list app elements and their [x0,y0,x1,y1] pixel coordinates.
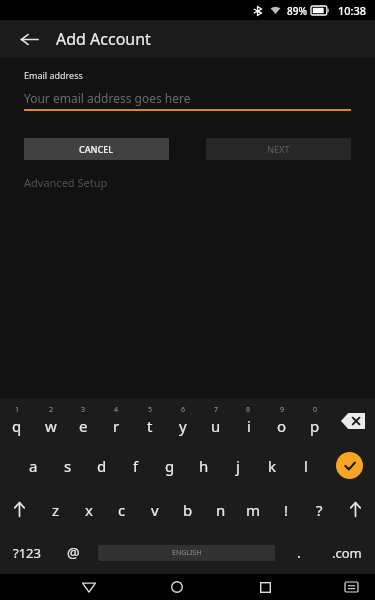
button[interactable]: . [279,531,319,574]
staticText: b [183,500,193,520]
button[interactable]: 3 [67,398,100,443]
staticText: Your email address goes here [24,90,191,106]
staticText: j [236,456,240,476]
staticText: Advanced Setup [24,175,108,190]
staticText: g [165,456,175,476]
staticText: 3 [81,405,86,415]
staticText: .com [332,544,362,562]
button[interactable]: k [255,443,289,488]
button[interactable]: a [16,443,51,488]
button[interactable]: 1 [0,398,34,443]
button[interactable]: Shift [0,488,39,531]
button[interactable]: 8 [232,398,265,443]
staticText: r [113,416,120,436]
staticText: e [79,416,88,436]
button[interactable]: Backspace [331,398,375,443]
staticText: y [179,416,187,436]
staticText: u [211,416,221,436]
staticText: q [12,416,22,436]
button[interactable]: d [85,443,119,488]
button[interactable]: Back [12,22,46,56]
staticText: 1 [15,405,20,415]
button[interactable]: f [119,443,153,488]
button[interactable]: ENGLISH [98,545,275,561]
button[interactable]: g [153,443,187,488]
button[interactable]: Shift [336,488,375,531]
staticText: . [297,543,301,562]
button[interactable]: c [105,488,138,531]
staticText: @ [67,543,80,562]
button[interactable]: CANCEL [24,138,169,160]
staticText: 9 [280,405,285,415]
staticText: n [216,500,226,520]
button[interactable]: ? [303,488,336,531]
staticText: NEXT [267,143,290,155]
button[interactable]: 9 [265,398,298,443]
staticText: l [304,456,308,476]
staticText: 8 [246,405,251,415]
button[interactable]: 6 [166,398,199,443]
staticText: 0 [313,405,318,415]
staticText: 89% [287,4,307,18]
staticText: 2 [49,405,54,415]
button[interactable]: NEXT [206,138,351,160]
button[interactable]: Recent apps [245,574,285,600]
staticText: d [97,456,107,476]
button[interactable]: ! [270,488,303,531]
button[interactable]: Home [157,574,197,600]
staticText: 6 [181,405,186,415]
staticText: k [268,456,277,476]
staticText: h [199,456,209,476]
button[interactable]: 7 [199,398,232,443]
button[interactable]: Your email address goes here [24,89,351,107]
button[interactable]: Change keyboard [333,574,369,600]
staticText: 4 [114,405,119,415]
staticText: v [151,500,159,520]
staticText: ! [284,500,289,520]
staticText: 5 [148,405,153,415]
staticText: m [246,500,261,520]
staticText: t [147,416,153,436]
button[interactable]: Back [69,574,109,600]
staticText: s [64,456,72,476]
staticText: 10:38 [338,3,367,18]
button[interactable]: @ [53,531,94,574]
button[interactable]: x [72,488,105,531]
staticText: Add Account [56,28,151,50]
button[interactable]: m [237,488,270,531]
staticText: z [52,500,60,520]
button[interactable]: 4 [100,398,133,443]
button[interactable]: s [51,443,85,488]
staticText: x [85,500,93,520]
button[interactable]: Advanced Setup [24,172,108,192]
staticText: a [29,456,38,476]
staticText: 7 [214,405,219,415]
staticText: o [277,416,287,436]
staticText: ? [316,500,323,520]
button[interactable]: Enter [323,443,375,488]
staticText: ?123 [13,544,41,562]
button[interactable]: l [289,443,323,488]
staticText: w [45,416,57,436]
staticText: Email address [24,69,83,81]
button[interactable]: ?123 [0,531,53,574]
button[interactable]: 2 [34,398,67,443]
staticText: c [118,500,126,520]
staticText: f [133,456,139,476]
staticText: p [310,416,320,436]
button[interactable]: n [204,488,237,531]
staticText: CANCEL [79,143,114,155]
staticText: i [247,416,251,436]
button[interactable]: z [39,488,72,531]
button[interactable]: 0 [298,398,331,443]
button[interactable]: b [171,488,204,531]
staticText: ENGLISH [172,548,202,558]
button[interactable]: h [187,443,221,488]
button[interactable]: 5 [133,398,166,443]
button[interactable]: j [221,443,255,488]
button[interactable]: .com [319,531,375,574]
button[interactable]: v [138,488,171,531]
